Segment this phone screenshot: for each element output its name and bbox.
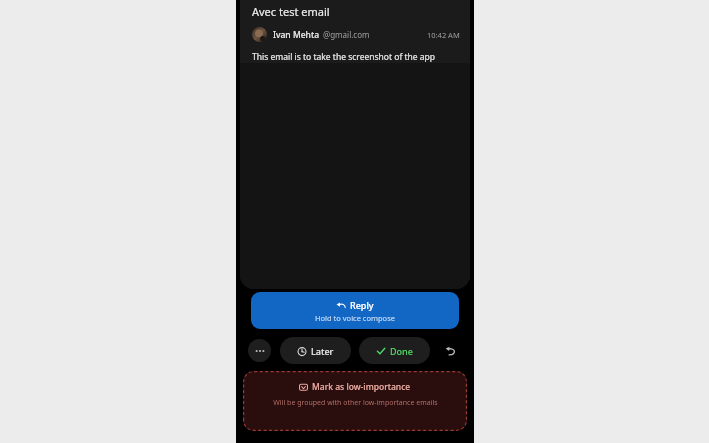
- staticText: Hold to voice compose: [315, 313, 395, 323]
- staticText: Reply: [350, 299, 374, 311]
- button[interactable]: Later: [280, 337, 351, 364]
- button[interactable]: Reply: [251, 292, 459, 329]
- button[interactable]: Undo: [439, 339, 462, 362]
- staticText: @gmail.com: [323, 29, 370, 40]
- button[interactable]: Done: [359, 337, 430, 364]
- staticText: Will be grouped with other low-importanc…: [273, 398, 438, 408]
- staticText: Later: [311, 345, 334, 357]
- button[interactable]: More options: [248, 339, 271, 362]
- staticText: Done: [390, 345, 413, 357]
- staticText: Mark as low-importance: [312, 381, 411, 393]
- staticText: Avec test email: [252, 4, 330, 19]
- staticText: Ivan Mehta: [273, 29, 320, 41]
- staticText: 10:42 AM: [427, 30, 460, 40]
- button[interactable]: Mark as low-importance: [243, 371, 467, 431]
- staticText: This email is to take the screenshot of …: [252, 51, 436, 63]
